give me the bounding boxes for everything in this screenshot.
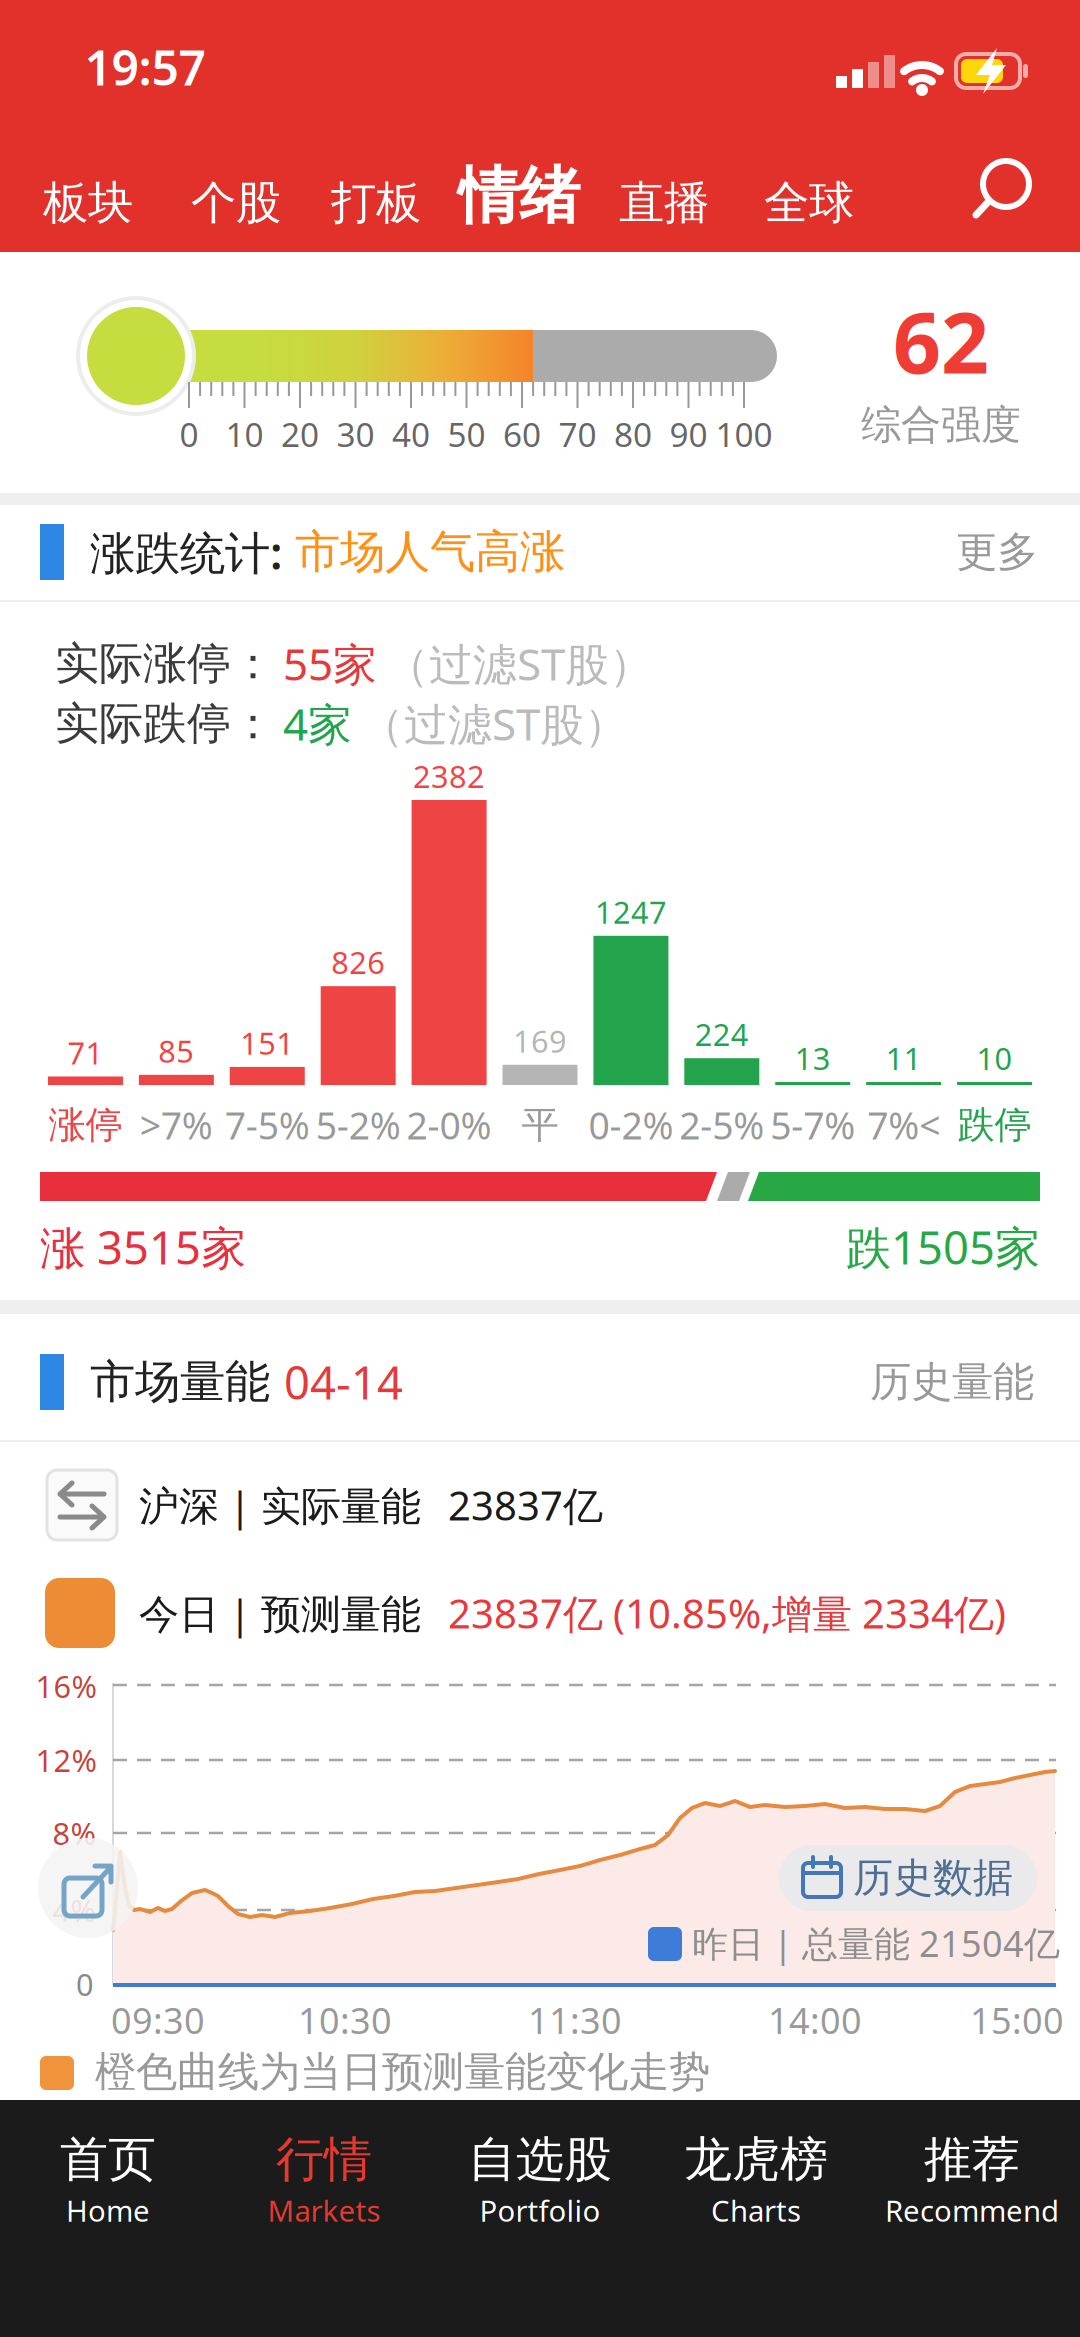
staticText: 实际跌停： (55, 696, 275, 750)
staticText: 826 (331, 942, 385, 982)
staticText: （过滤ST股） (385, 634, 653, 693)
staticText: 实际涨停： (55, 636, 275, 690)
staticText: 16% (35, 1666, 96, 1706)
staticText: 情绪 (458, 158, 580, 234)
staticText: 直播 (619, 175, 709, 231)
staticText: 20 (281, 412, 319, 456)
button[interactable]: Search (969, 161, 1035, 221)
staticText: 7-5% (225, 1100, 310, 1150)
staticText: 历史量能 (870, 1357, 1034, 1407)
staticText: 推荐 (924, 2130, 1020, 2189)
staticText: 169 (513, 1020, 567, 1061)
staticText: 历史数据 (853, 1853, 1013, 1902)
staticText: 全球 (764, 175, 854, 231)
staticText: 昨日 | 总量能 21504亿 (692, 1919, 1060, 1967)
staticText: 首页 (60, 2130, 156, 2189)
button[interactable]: 历史数据 (779, 1845, 1037, 1911)
staticText: 11:30 (528, 1996, 622, 2044)
button[interactable]: 打板 (331, 175, 421, 231)
staticText: 市场人气高涨 (295, 524, 565, 580)
staticText: Markets (267, 2191, 380, 2230)
staticText: 综合强度 (861, 400, 1021, 449)
staticText: 8% (52, 1813, 95, 1853)
staticText: 62 (893, 285, 989, 397)
button[interactable]: 更多 (956, 527, 1038, 577)
staticText: 40 (392, 412, 430, 456)
staticText: 55家 (283, 634, 377, 693)
staticText: 5-7% (770, 1100, 855, 1150)
staticText: 个股 (191, 175, 281, 231)
button[interactable]: 自选股 (432, 2120, 648, 2240)
staticText: 跌停 (957, 1102, 1031, 1148)
button[interactable]: 行情 (216, 2120, 432, 2240)
staticText: 更多 (956, 527, 1038, 577)
staticText: 71 (67, 1032, 103, 1073)
staticText: 85 (158, 1030, 194, 1071)
button[interactable]: 历史量能 (870, 1357, 1034, 1407)
staticText: 100 (715, 412, 772, 456)
staticText: 平 (521, 1102, 558, 1148)
staticText: 09:30 (111, 1996, 205, 2044)
staticText: Recommend (885, 2191, 1059, 2230)
staticText: 10 (225, 412, 263, 456)
staticText: Portfolio (479, 2191, 600, 2230)
staticText: 沪深 | 实际量能 (139, 1478, 421, 1531)
staticText: 10:30 (298, 1996, 392, 2044)
staticText: Charts (711, 2191, 801, 2230)
button[interactable]: 推荐 (864, 2120, 1080, 2240)
staticText: 今日 | 预测量能 (139, 1586, 421, 1639)
staticText: 60 (503, 412, 541, 456)
staticText: 19:57 (84, 35, 205, 99)
staticText: 10 (976, 1038, 1012, 1078)
staticText: 市场量能 (90, 1354, 270, 1410)
staticText: 70 (558, 412, 596, 456)
staticText: 涨跌统计: (90, 522, 283, 582)
staticText: 224 (695, 1014, 749, 1054)
staticText: 橙色曲线为当日预测量能变化走势 (95, 2047, 710, 2097)
staticText: Home (66, 2191, 150, 2230)
button[interactable]: 首页 (0, 2120, 216, 2240)
staticText: 涨 3515家 (40, 1217, 246, 1277)
staticText: 50 (447, 412, 485, 456)
staticText: 龙虎榜 (684, 2130, 828, 2189)
staticText: 4家 (283, 694, 352, 753)
staticText: 0 (179, 412, 198, 456)
button[interactable]: 情绪 (458, 158, 580, 234)
staticText: 跌1505家 (846, 1217, 1040, 1277)
staticText: 涨停 (48, 1102, 122, 1148)
staticText: 自选股 (468, 2130, 612, 2189)
button[interactable]: 个股 (191, 175, 281, 231)
staticText: 7%< (867, 1100, 940, 1150)
staticText: 0 (76, 1964, 94, 2004)
staticText: 2382 (413, 756, 485, 796)
staticText: 2-0% (407, 1100, 492, 1150)
staticText: 13 (795, 1038, 831, 1078)
staticText: 打板 (331, 175, 421, 231)
staticText: 151 (240, 1023, 294, 1063)
staticText: 90 (669, 412, 707, 456)
staticText: 板块 (43, 175, 133, 231)
staticText: 14:00 (768, 1996, 862, 2044)
staticText: 2-5% (679, 1100, 764, 1150)
staticText: >7% (140, 1100, 213, 1150)
button[interactable]: 直播 (619, 175, 709, 231)
staticText: 1247 (595, 891, 667, 932)
staticText: 15:00 (970, 1996, 1064, 2044)
staticText: 30 (336, 412, 374, 456)
staticText: 11 (886, 1038, 922, 1078)
staticText: 行情 (276, 2130, 372, 2189)
button[interactable]: 板块 (43, 175, 133, 231)
staticText: 0-2% (588, 1100, 673, 1150)
staticText: （过滤ST股） (360, 694, 628, 753)
staticText: 23837亿 (10.85%,增量 2334亿) (448, 1586, 1006, 1639)
staticText: 23837亿 (448, 1478, 603, 1531)
staticText: 80 (614, 412, 652, 456)
staticText: 5-2% (316, 1100, 401, 1150)
button[interactable]: 全球 (764, 175, 854, 231)
staticText: 4% (52, 1890, 95, 1930)
button[interactable]: 龙虎榜 (648, 2120, 864, 2240)
staticText: 04-14 (284, 1352, 403, 1412)
staticText: 12% (35, 1740, 96, 1780)
button[interactable]: Share (38, 1838, 138, 1938)
